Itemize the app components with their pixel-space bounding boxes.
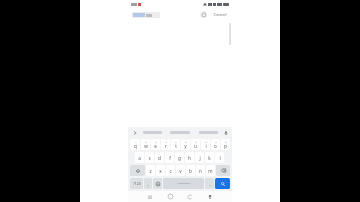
staticText: n (199, 168, 202, 174)
staticText: q (134, 143, 137, 149)
staticText: 1 (135, 140, 137, 143)
button[interactable]: z (146, 165, 155, 176)
staticText: 4 (165, 140, 167, 143)
staticText: t (175, 143, 177, 149)
staticText: i (205, 143, 207, 149)
staticText: r (165, 143, 167, 149)
staticText: Cancel (213, 12, 227, 18)
button[interactable]: Back (180, 191, 200, 202)
staticText: v (179, 168, 182, 174)
button[interactable]: 1 (130, 139, 140, 150)
button[interactable]: Emoji (153, 178, 162, 189)
staticText: ?123 (133, 181, 141, 186)
staticText: 0 (225, 140, 227, 143)
staticText: 6 (185, 140, 187, 143)
staticText: c (169, 168, 172, 174)
button[interactable]: f (165, 152, 174, 163)
button[interactable]: Search (215, 178, 230, 189)
staticText: y (184, 143, 187, 149)
button[interactable]: l (215, 152, 224, 163)
staticText: h (188, 155, 191, 161)
button[interactable]: 9 (211, 139, 220, 150)
button[interactable]: 5 (171, 139, 180, 150)
staticText: s (148, 155, 151, 161)
button[interactable]: j (195, 152, 204, 163)
button[interactable]: Symbols (130, 178, 143, 189)
staticText: 8 (205, 140, 207, 143)
button[interactable]: Shift (130, 165, 145, 176)
staticText: l (219, 155, 221, 161)
button[interactable]: g (175, 152, 184, 163)
button[interactable]: v (176, 165, 185, 176)
button[interactable]: Comma (144, 178, 152, 189)
staticText: o (214, 143, 217, 149)
button[interactable]: c (166, 165, 175, 176)
button[interactable]: k (205, 152, 214, 163)
button[interactable]: Space (163, 178, 204, 189)
button[interactable]: 4 (161, 139, 170, 150)
button[interactable] (139, 129, 165, 135)
button[interactable]: Voice input (222, 129, 229, 136)
staticText: p (224, 143, 227, 149)
button[interactable]: Cancel (212, 12, 228, 18)
staticText: u (194, 143, 197, 149)
staticText: 5 (175, 140, 177, 143)
button[interactable] (167, 129, 193, 135)
button[interactable]: h (185, 152, 194, 163)
staticText: 9 (215, 140, 217, 143)
staticText: 7 (195, 140, 197, 143)
staticText: d (158, 155, 161, 161)
button[interactable]: 3 (151, 139, 160, 150)
button[interactable]: Backspace (216, 165, 230, 176)
button[interactable]: 0 (221, 139, 230, 150)
button[interactable]: 8 (201, 139, 210, 150)
staticText: g (178, 155, 181, 161)
button[interactable]: Keyboard (200, 191, 220, 202)
button[interactable] (132, 12, 160, 18)
button[interactable]: 6 (181, 139, 190, 150)
staticText: 2 (145, 140, 147, 143)
staticText: k (208, 155, 211, 161)
staticText: w (144, 143, 148, 149)
staticText: f (169, 155, 171, 161)
staticText: x (159, 168, 162, 174)
staticText: b (189, 168, 192, 174)
button[interactable]: a (135, 152, 144, 163)
staticText: . (209, 181, 211, 187)
button[interactable]: s (145, 152, 154, 163)
staticText: z (149, 168, 152, 174)
button[interactable] (195, 129, 221, 135)
button[interactable]: Home (160, 191, 180, 202)
staticText: 3 (155, 140, 157, 143)
button[interactable]: 2 (141, 139, 150, 150)
button[interactable]: Period (205, 178, 214, 189)
button[interactable]: More suggestions (131, 129, 138, 136)
button[interactable]: d (155, 152, 164, 163)
staticText: m (208, 168, 213, 174)
staticText: a (138, 155, 141, 161)
button[interactable]: x (156, 165, 165, 176)
staticText: , (147, 181, 149, 187)
staticText: e (154, 143, 157, 149)
button[interactable]: Clear (200, 11, 207, 18)
staticText: j (199, 155, 201, 161)
button[interactable]: m (206, 165, 215, 176)
button[interactable]: 7 (191, 139, 200, 150)
button[interactable]: b (186, 165, 195, 176)
button[interactable]: n (196, 165, 205, 176)
button[interactable]: Recent apps (140, 191, 160, 202)
